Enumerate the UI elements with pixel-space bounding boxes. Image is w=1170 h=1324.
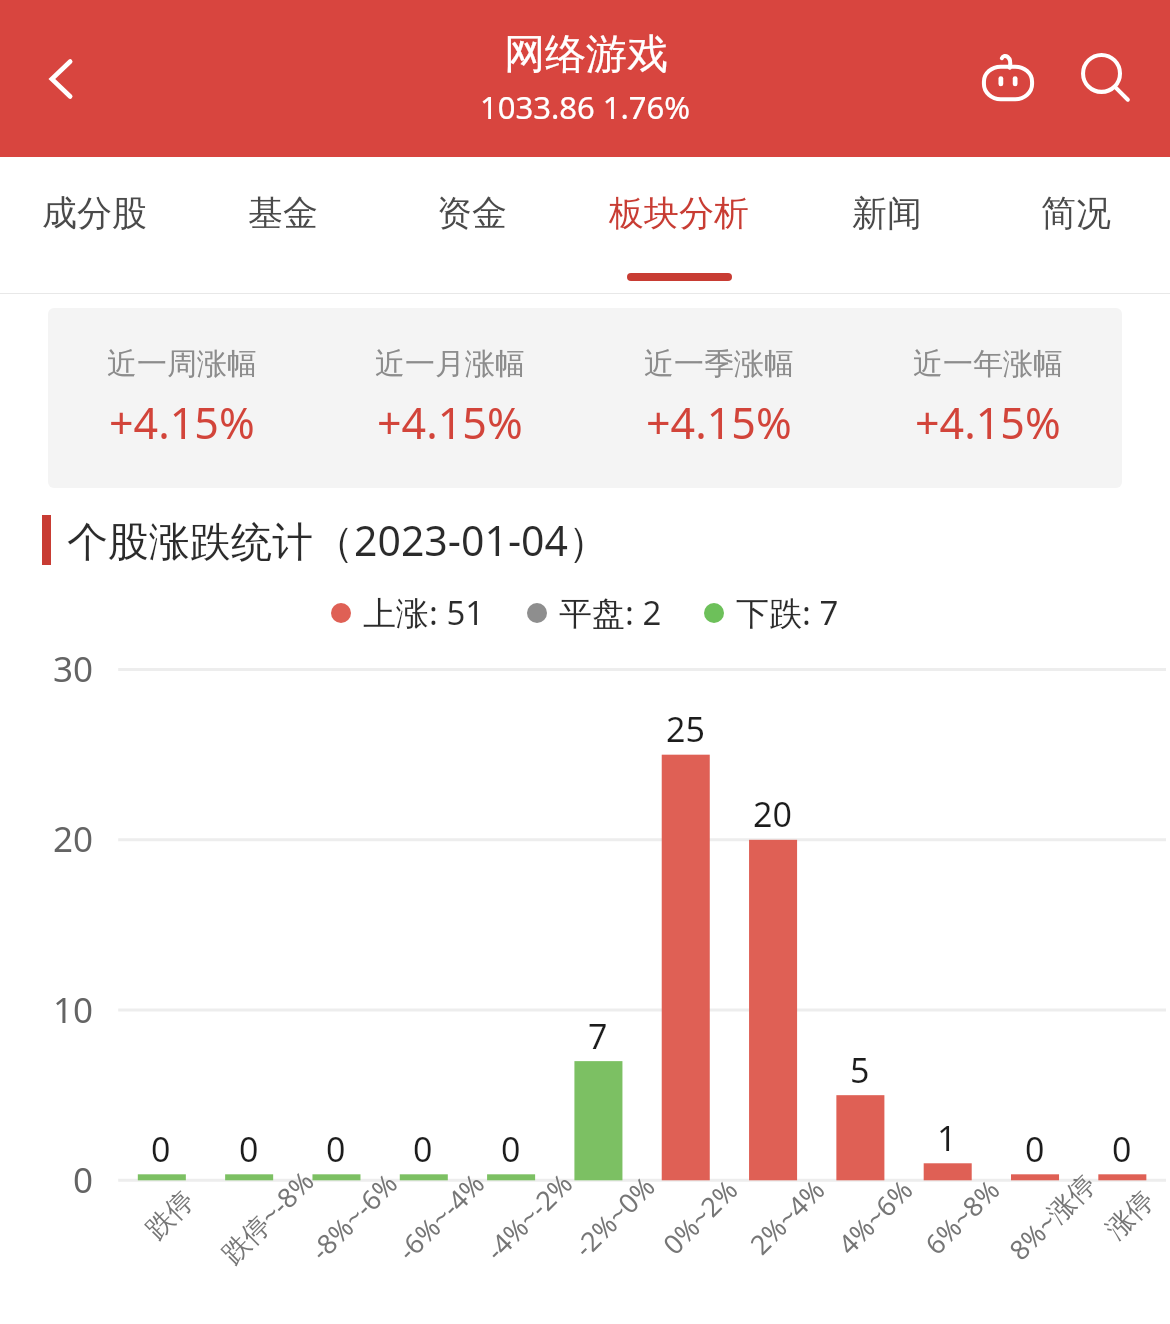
staticText: 0	[151, 1126, 171, 1172]
staticText: 0	[73, 1156, 94, 1204]
button[interactable]: 下跌: 7	[704, 590, 839, 635]
staticText: 0	[501, 1126, 521, 1172]
button[interactable]: 近一季涨幅	[584, 308, 853, 488]
staticText: 10	[53, 986, 94, 1034]
staticText: -2%~0%	[566, 1168, 662, 1265]
staticText: 近一月涨幅	[375, 345, 525, 383]
staticText: +4.15%	[109, 393, 255, 452]
staticText: 上涨: 51	[363, 590, 485, 635]
staticText: 1033.86 1.76%	[480, 86, 691, 128]
staticText: 0	[1112, 1126, 1132, 1172]
staticText: +4.15%	[646, 393, 792, 452]
button[interactable]: 新闻	[792, 157, 981, 294]
button[interactable]: 近一年涨幅	[853, 308, 1122, 488]
staticText: 1	[937, 1115, 957, 1161]
staticText: 0	[326, 1126, 346, 1172]
staticText: 简况	[1041, 191, 1111, 235]
staticText: 个股涨跌统计（2023-01-04）	[67, 512, 610, 568]
button[interactable]: Back	[18, 36, 104, 122]
staticText: 近一年涨幅	[913, 345, 1063, 383]
staticText: 20	[53, 815, 94, 863]
staticText: 近一周涨幅	[107, 345, 257, 383]
staticText: 平盘: 2	[559, 590, 662, 635]
button[interactable]: 资金	[377, 157, 566, 294]
staticText: -4%~-2%	[477, 1165, 580, 1268]
staticText: 资金	[437, 191, 507, 235]
button[interactable]: 平盘: 2	[527, 590, 662, 635]
staticText: -6%~-4%	[389, 1165, 492, 1268]
staticText: 新闻	[852, 191, 922, 235]
staticText: +4.15%	[915, 393, 1061, 452]
staticText: 跌停	[139, 1184, 201, 1246]
button[interactable]: Assistant	[966, 37, 1050, 121]
staticText: 30	[53, 645, 94, 693]
button[interactable]: 上涨: 51	[331, 590, 485, 635]
staticText: 0	[1025, 1126, 1045, 1172]
staticText: 6%~8%	[916, 1171, 1008, 1262]
staticText: 4%~6%	[829, 1171, 921, 1262]
staticText: 近一季涨幅	[644, 345, 794, 383]
staticText: 7	[588, 1013, 608, 1059]
button[interactable]: 基金	[188, 157, 377, 294]
staticText: 0	[413, 1126, 433, 1172]
button[interactable]: Search	[1064, 37, 1148, 121]
staticText: 基金	[248, 191, 318, 235]
staticText: 成分股	[42, 191, 147, 235]
button[interactable]: 板块分析	[566, 157, 792, 294]
staticText: +4.15%	[377, 393, 523, 452]
staticText: 5	[850, 1047, 870, 1093]
staticText: -8%~-6%	[302, 1165, 405, 1268]
staticText: 板块分析	[609, 191, 749, 235]
button[interactable]: 近一周涨幅	[48, 308, 316, 488]
staticText: 25	[666, 706, 705, 752]
button[interactable]: 近一月涨幅	[316, 308, 584, 488]
button[interactable]: 成分股	[0, 157, 188, 294]
staticText: 2%~4%	[741, 1171, 833, 1262]
staticText: 0%~2%	[654, 1171, 746, 1262]
staticText: 跌停~-8%	[213, 1162, 322, 1271]
staticText: 8%~涨停	[1001, 1165, 1103, 1268]
staticText: 20	[753, 791, 792, 837]
staticText: 网络游戏	[504, 29, 668, 81]
staticText: 涨停	[1099, 1184, 1161, 1246]
button[interactable]: 简况	[981, 157, 1170, 294]
staticText: 0	[239, 1126, 259, 1172]
staticText: 下跌: 7	[736, 590, 839, 635]
